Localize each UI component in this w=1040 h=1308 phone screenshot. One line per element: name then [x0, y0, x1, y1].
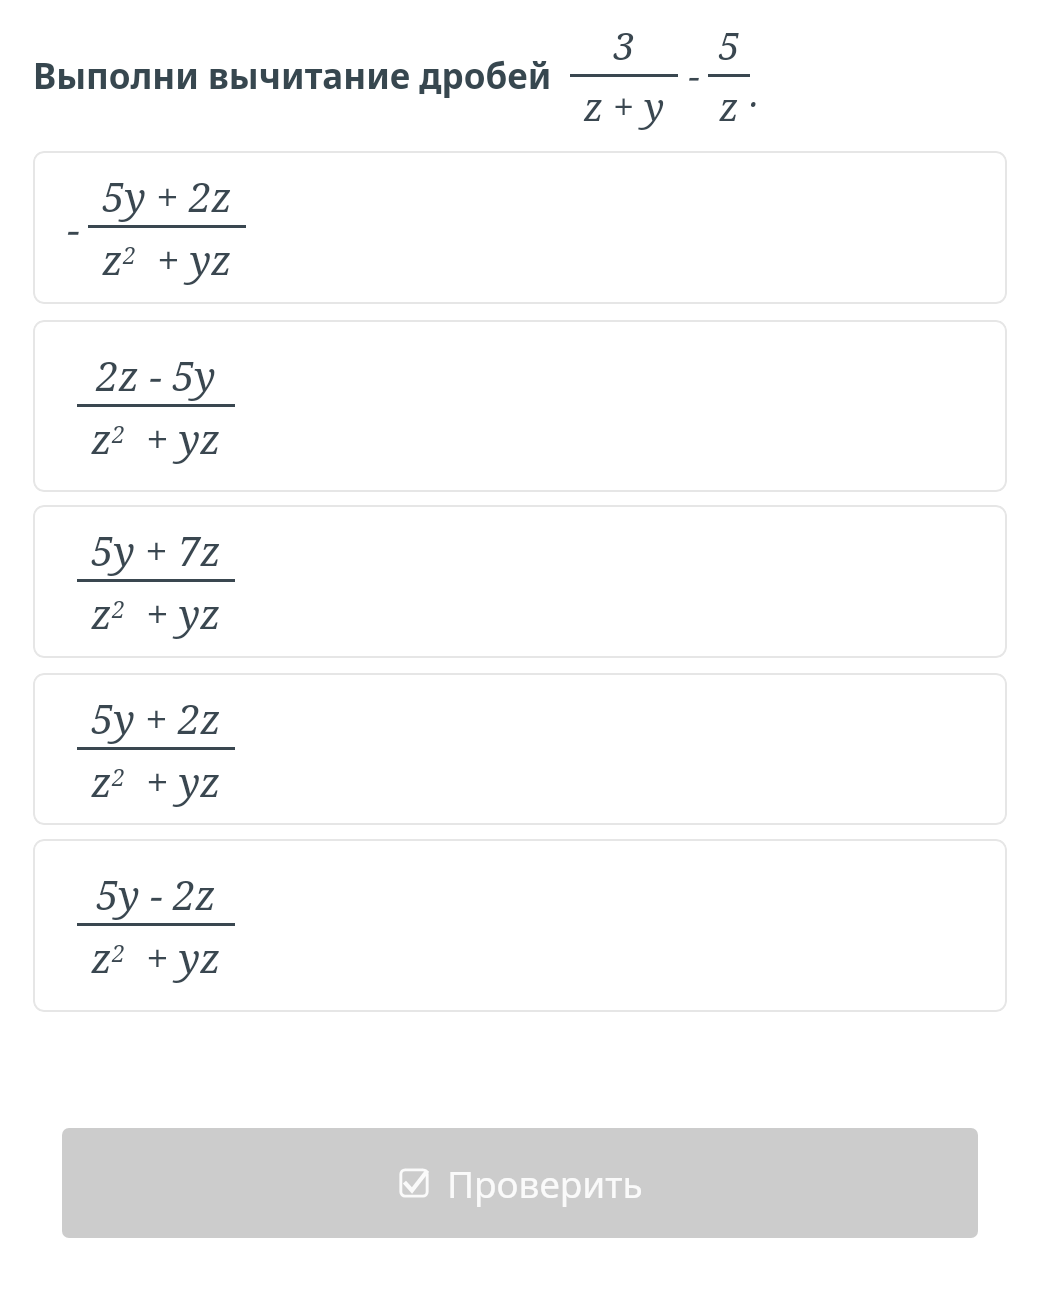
button[interactable]: 5y − 2z	[33, 839, 1007, 1012]
button[interactable]: Проверить	[62, 1128, 978, 1238]
staticText: 2z − 5y	[77, 348, 235, 402]
staticText: 2	[112, 761, 125, 792]
staticText: 5y − 2z	[77, 867, 235, 921]
staticText: 5y + 7z	[77, 523, 235, 577]
staticText: −	[688, 51, 700, 100]
staticText: z	[91, 754, 112, 808]
staticText: + yz	[125, 754, 221, 808]
staticText: z	[708, 80, 750, 132]
staticText: z + y	[570, 80, 678, 132]
button[interactable]: 2z − 5y	[33, 320, 1007, 492]
staticText: + yz	[125, 411, 221, 465]
button[interactable]: 5y + 2z	[33, 673, 1007, 825]
staticText: Проверить	[447, 1158, 643, 1208]
staticText: z	[91, 411, 112, 465]
staticText: z	[91, 586, 112, 640]
staticText: .	[750, 69, 759, 118]
staticText: + yz	[125, 586, 221, 640]
staticText: 5y + 2z	[77, 691, 235, 745]
staticText: 2	[112, 937, 125, 968]
button[interactable]: 5y + 7z	[33, 505, 1007, 658]
staticText: z	[102, 232, 123, 286]
staticText: + yz	[136, 232, 232, 286]
staticText: Выполни вычитание дробей	[33, 52, 552, 100]
staticText: + yz	[125, 930, 221, 984]
staticText: 3	[570, 19, 678, 71]
staticText: 2	[112, 418, 125, 449]
staticText: 2	[112, 593, 125, 624]
staticText: −	[67, 201, 80, 255]
staticText: 5y + 2z	[88, 169, 246, 223]
button[interactable]: −	[33, 151, 1007, 304]
staticText: z	[91, 930, 112, 984]
staticText: 5	[708, 19, 750, 71]
staticText: 2	[123, 239, 136, 270]
